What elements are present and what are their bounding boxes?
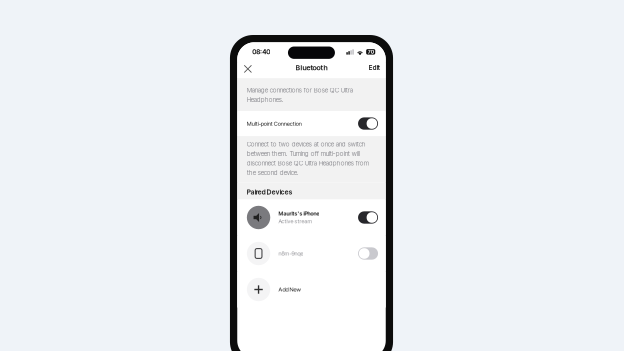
staticText: 08:40 [252, 48, 270, 56]
staticText: n8m-9nqe [278, 250, 303, 257]
staticText: Paired Devices [247, 188, 292, 196]
button[interactable]: Add New [237, 271, 386, 307]
staticText: Active stream [278, 218, 312, 225]
button[interactable]: Close [240, 61, 255, 76]
staticText: Bluetooth [295, 63, 327, 72]
staticText: 70 [368, 49, 374, 55]
staticText: Add New [278, 286, 300, 293]
staticText: Edit [369, 64, 380, 71]
staticText: Multi-point Connection [247, 120, 302, 127]
button[interactable]: Edit [366, 62, 382, 73]
button[interactable]: Multi-point Connection [237, 111, 386, 136]
staticText: Manage connections for Bose QC Ultra Hea… [247, 86, 353, 104]
button[interactable]: n8m-9nqe [237, 235, 386, 271]
staticText: Connect to two devices at once and switc… [247, 140, 369, 177]
staticText: Maurits's iPhone [278, 210, 319, 217]
button[interactable]: Maurits's iPhone [237, 199, 386, 235]
